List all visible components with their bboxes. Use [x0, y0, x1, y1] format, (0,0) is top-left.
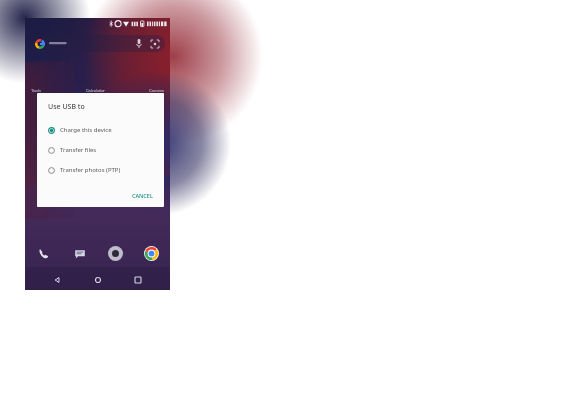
- button[interactable]: Voice search: [30, 35, 165, 52]
- button[interactable]: Phone: [34, 244, 53, 263]
- staticText: CANCEL: [132, 192, 153, 199]
- button[interactable]: Recent apps: [129, 271, 147, 289]
- staticText: Charge this device: [60, 126, 112, 134]
- staticText: Transfer photos (PTP): [60, 166, 121, 174]
- staticText: Use USB to: [48, 102, 85, 112]
- button[interactable]: Transfer photos (PTP): [37, 165, 164, 175]
- button[interactable]: Voice search: [133, 38, 144, 49]
- button[interactable]: Transfer files: [37, 145, 164, 155]
- button[interactable]: Back: [48, 271, 66, 289]
- button[interactable]: Google Lens: [149, 38, 160, 49]
- staticText: Tools: [31, 88, 41, 93]
- button[interactable]: Messages: [70, 244, 89, 263]
- staticText: Calculator: [86, 88, 105, 93]
- button[interactable]: Chrome: [142, 244, 161, 263]
- staticText: Transfer files: [60, 146, 97, 154]
- button[interactable]: Charge this device: [37, 125, 164, 135]
- button[interactable]: Home: [89, 271, 107, 289]
- button[interactable]: Camera: [106, 244, 125, 263]
- staticText: Camera: [149, 88, 164, 93]
- button[interactable]: CANCEL: [128, 190, 157, 201]
